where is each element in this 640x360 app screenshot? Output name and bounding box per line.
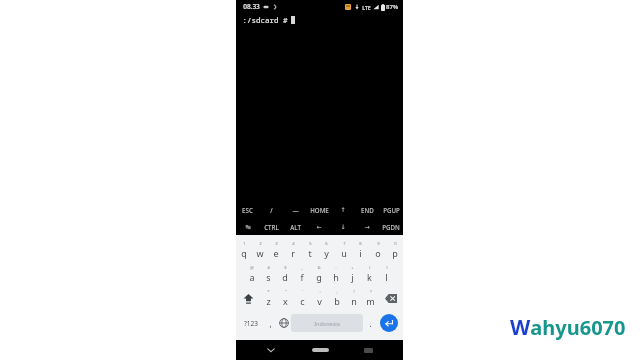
button[interactable]: Enter <box>380 314 398 332</box>
staticText: , <box>269 318 272 329</box>
button[interactable]: — <box>283 201 307 218</box>
staticText: w <box>256 247 264 259</box>
button[interactable]: + <box>344 262 361 286</box>
staticText: . <box>369 318 372 329</box>
staticText: i <box>359 247 362 259</box>
button[interactable]: 9 <box>369 238 386 262</box>
button[interactable]: PGDN <box>379 218 403 235</box>
staticText: k <box>367 271 372 283</box>
button[interactable]: ; <box>328 286 345 310</box>
button[interactable]: ↓ <box>331 218 355 235</box>
button[interactable]: 3 <box>268 238 284 262</box>
staticText: $ <box>284 265 287 271</box>
button[interactable]: , <box>263 310 277 336</box>
button[interactable]: 7 <box>335 238 352 262</box>
button[interactable]: # <box>260 262 276 286</box>
staticText: 2 <box>259 241 262 247</box>
staticText: ?123 <box>244 319 258 328</box>
staticText: _ <box>301 265 303 271</box>
button[interactable]: ALT <box>283 218 307 235</box>
staticText: ( <box>369 265 371 271</box>
button[interactable]: Back <box>261 340 281 360</box>
staticText: ! <box>353 289 355 295</box>
button[interactable]: & <box>310 262 327 286</box>
staticText: LTE <box>362 4 371 11</box>
staticText: # <box>267 265 270 271</box>
button[interactable]: / <box>259 201 283 218</box>
button[interactable]: - <box>327 262 344 286</box>
button[interactable]: ← <box>307 218 331 235</box>
button[interactable]: $ <box>276 262 293 286</box>
staticText: g <box>316 271 322 283</box>
staticText: v <box>317 295 322 307</box>
button[interactable]: Change language <box>277 310 291 336</box>
staticText: a <box>249 271 255 283</box>
staticText: ↹ <box>245 223 251 230</box>
button[interactable]: . <box>363 310 377 336</box>
staticText: ESC <box>242 206 253 214</box>
button[interactable]: 1 <box>236 238 252 262</box>
staticText: l <box>385 271 388 283</box>
button[interactable]: ) <box>378 262 395 286</box>
staticText: d <box>282 271 288 283</box>
staticText: ← <box>316 223 322 230</box>
button[interactable]: ! <box>345 286 362 310</box>
button[interactable]: END <box>355 201 379 218</box>
button[interactable]: → <box>355 218 379 235</box>
staticText: ↓ <box>340 223 346 230</box>
button[interactable]: Recents <box>358 340 378 360</box>
staticText: @ <box>250 265 254 271</box>
button[interactable]: 5 <box>301 238 318 262</box>
button[interactable]: 6 <box>318 238 335 262</box>
button[interactable]: ↹ <box>236 218 259 235</box>
staticText: CTRL <box>264 223 279 231</box>
button[interactable]: * <box>260 286 277 310</box>
staticText: h <box>333 271 339 283</box>
button[interactable]: ' <box>294 286 311 310</box>
staticText: z <box>266 295 271 307</box>
staticText: 0 <box>394 241 397 247</box>
button[interactable]: ? <box>362 286 379 310</box>
staticText: r <box>291 247 295 259</box>
staticText: — <box>292 206 299 214</box>
staticText: END <box>361 206 374 214</box>
staticText: t <box>308 247 312 259</box>
button[interactable]: 8 <box>352 238 369 262</box>
staticText: 08.33 <box>243 2 260 11</box>
staticText: :/sdcard # <box>240 15 290 25</box>
button[interactable]: Indonesia <box>291 314 363 332</box>
staticText: x <box>283 295 288 307</box>
staticText: u <box>341 247 347 259</box>
button[interactable]: " <box>277 286 294 310</box>
button[interactable]: ↑ <box>331 201 355 218</box>
staticText: 3 <box>275 241 278 247</box>
button[interactable]: PGUP <box>379 201 403 218</box>
staticText: ALT <box>290 223 301 231</box>
staticText: j <box>351 271 354 283</box>
staticText: 4 <box>292 241 295 247</box>
staticText: PGDN <box>382 223 400 231</box>
staticText: * <box>267 289 270 295</box>
staticText: ) <box>386 265 388 271</box>
staticText: : <box>319 289 321 295</box>
button[interactable]: ?123 <box>239 310 263 336</box>
staticText: 7 <box>343 241 346 247</box>
button[interactable]: : <box>311 286 328 310</box>
button[interactable]: _ <box>293 262 310 286</box>
button[interactable]: 0 <box>386 238 403 262</box>
button[interactable]: ( <box>361 262 378 286</box>
staticText: q <box>241 247 247 259</box>
button[interactable]: CTRL <box>259 218 283 235</box>
button[interactable]: ESC <box>236 201 259 218</box>
button[interactable]: Backspace <box>379 286 403 310</box>
button[interactable]: @ <box>244 262 260 286</box>
button[interactable]: Shift <box>236 286 260 310</box>
button[interactable]: HOME <box>307 201 331 218</box>
button[interactable]: Home <box>307 340 333 360</box>
staticText: → <box>364 223 370 230</box>
staticText: PGUP <box>383 206 400 214</box>
staticText: 8 <box>359 241 362 247</box>
button[interactable]: 2 <box>252 238 268 262</box>
staticText: m <box>366 295 375 307</box>
button[interactable]: 4 <box>284 238 301 262</box>
